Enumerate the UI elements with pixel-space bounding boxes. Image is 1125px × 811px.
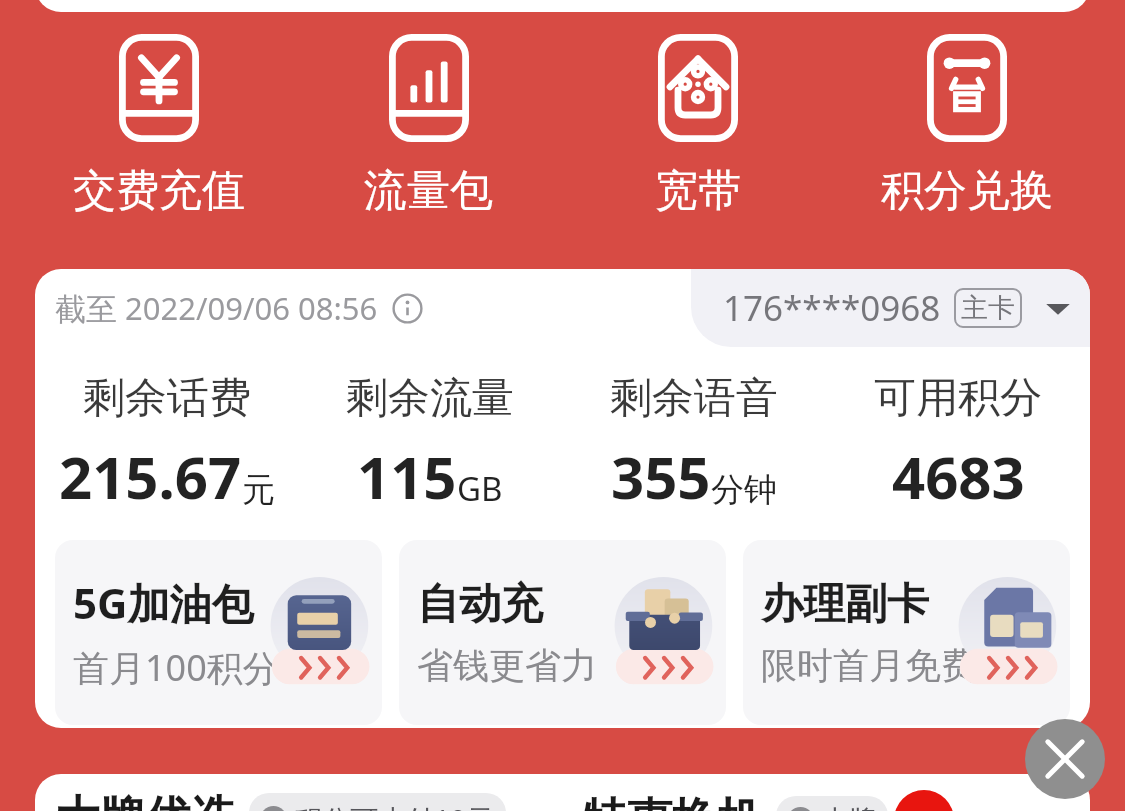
staticText: 截至 2022/09/06 08:56	[55, 287, 378, 329]
button[interactable]: 大牌优选	[35, 790, 562, 811]
staticText: 主卡	[961, 291, 1015, 325]
staticText: 省钱更省力	[417, 643, 597, 688]
button[interactable]: 剩余流量	[298, 372, 562, 516]
button[interactable]: 截至 2022/09/06 08:56	[55, 287, 423, 329]
staticText: 215.67	[59, 437, 242, 516]
button[interactable]: 流量包	[294, 34, 563, 218]
staticText: 剩余话费	[83, 372, 251, 425]
staticText: 办理副卡	[761, 578, 929, 631]
button[interactable]	[35, 0, 1090, 12]
button[interactable]: 剩余语音	[562, 372, 826, 516]
staticText: 176****0968	[723, 284, 941, 332]
staticText: 元	[242, 469, 275, 511]
staticText: 可用积分	[874, 372, 1042, 425]
staticText: 积分可少付10元	[294, 800, 495, 811]
button[interactable]: Close	[1025, 719, 1105, 799]
button[interactable]: 剩余话费	[35, 372, 298, 516]
staticText: 剩余语音	[610, 372, 778, 425]
staticText: 交费充值	[73, 164, 245, 218]
button[interactable]: 自动充	[399, 540, 726, 725]
button[interactable]: 大牌优选	[35, 774, 1090, 811]
staticText: 115	[357, 437, 457, 516]
staticText: GB	[457, 466, 503, 511]
button[interactable]: 宽带	[563, 34, 832, 218]
staticText: 4683	[892, 437, 1025, 516]
staticText: 大牌	[821, 803, 877, 811]
staticText: 流量包	[364, 164, 493, 218]
staticText: 特惠换机	[582, 792, 762, 811]
staticText: 首月100积分	[73, 643, 279, 692]
button[interactable]: 176****0968	[691, 269, 1090, 347]
staticText: 355	[611, 437, 711, 516]
button[interactable]: 办理副卡	[743, 540, 1070, 725]
staticText: 积分兑换	[881, 164, 1053, 218]
button[interactable]: 5G加油包	[55, 540, 382, 725]
button[interactable]: 积分兑换	[832, 34, 1101, 218]
button[interactable]: 交费充值	[24, 34, 294, 218]
button[interactable]: 可用积分	[826, 372, 1090, 516]
staticText: 分钟	[711, 469, 777, 511]
staticText: 剩余流量	[346, 372, 514, 425]
staticText: 大牌优选	[55, 790, 235, 811]
staticText: 限时首月免费	[761, 643, 977, 688]
staticText: 宽带	[655, 164, 741, 218]
staticText: 5G加油包	[73, 574, 254, 631]
button[interactable]: 特惠换机	[562, 790, 1090, 811]
staticText: 自动充	[417, 578, 543, 631]
